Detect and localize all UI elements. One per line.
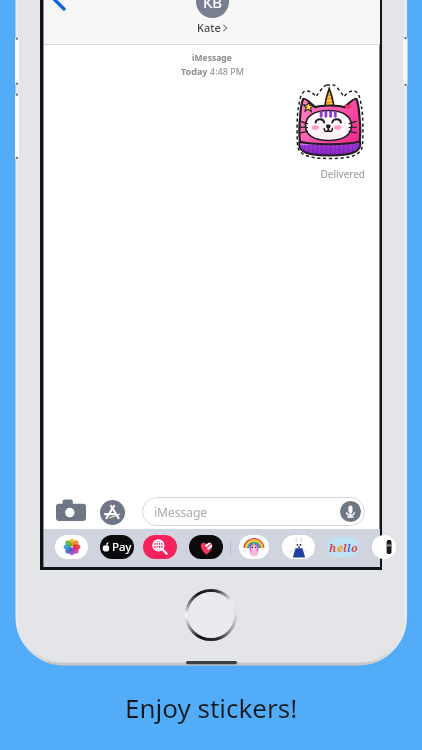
staticText: iMessage <box>192 52 232 64</box>
button[interactable] <box>282 535 315 559</box>
button[interactable]: iMessage <box>142 497 365 526</box>
button[interactable]: Camera <box>56 498 86 524</box>
staticText: Delivered <box>275 167 365 181</box>
button[interactable]: h <box>327 537 359 557</box>
staticText: h <box>329 540 337 555</box>
staticText: KB <box>203 0 223 12</box>
button[interactable] <box>143 535 177 559</box>
staticText: Kate <box>197 20 221 35</box>
button[interactable]: KB <box>180 0 244 35</box>
staticText: e <box>337 540 343 555</box>
staticText: iMessage <box>154 504 208 520</box>
staticText: Pay <box>112 539 132 555</box>
staticText: Enjoy stickers! <box>125 690 298 725</box>
button[interactable] <box>55 535 88 559</box>
staticText: l <box>347 540 351 555</box>
button[interactable] <box>189 535 223 559</box>
button[interactable] <box>239 535 269 559</box>
button[interactable] <box>372 535 396 559</box>
button[interactable]: App Store <box>100 500 125 525</box>
staticText: o <box>351 540 358 555</box>
staticText: 4:48 PM <box>210 65 244 77</box>
staticText: l <box>343 540 347 555</box>
button[interactable]: Back <box>48 0 78 14</box>
staticText: Today <box>181 65 210 77</box>
button[interactable]: Pay <box>100 535 134 559</box>
